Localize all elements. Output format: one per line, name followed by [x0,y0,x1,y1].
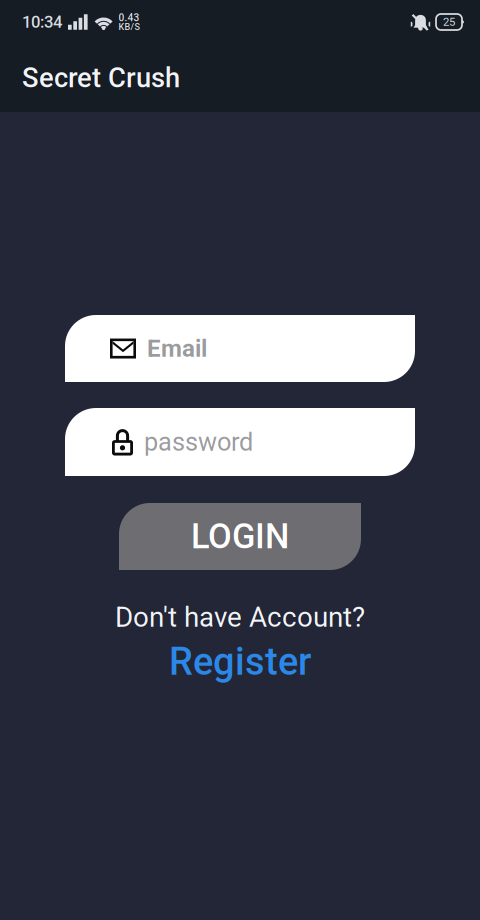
staticText: 0.43 [119,12,140,24]
staticText: Register [169,639,311,684]
staticText: LOGIN [191,516,289,557]
button[interactable]: Email [65,315,415,382]
staticText: Email [147,334,207,363]
staticText: KB/S [119,22,140,32]
staticText: 25 [443,15,455,29]
staticText: 10:34 [22,12,62,32]
staticText: password [144,427,253,457]
button[interactable]: Register [169,639,311,684]
button[interactable]: LOGIN [119,503,361,570]
staticText: Don't have Account? [115,601,365,633]
staticText: Secret Crush [22,62,180,94]
button[interactable]: password [65,408,415,476]
